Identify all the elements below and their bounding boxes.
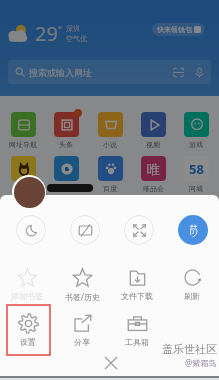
button[interactable]: 网址导航 (6, 112, 40, 149)
staticText: ° (58, 23, 62, 35)
button[interactable]: 快来领钱包 (152, 23, 205, 36)
button[interactable]: Ad blocker (178, 215, 208, 245)
button[interactable]: 百度 (93, 156, 127, 193)
staticText: 百度 (103, 184, 117, 193)
button[interactable]: Hide images (70, 215, 100, 245)
staticText: 搜索或输入网址 (29, 67, 92, 78)
button[interactable]: 分享 (55, 313, 109, 347)
button[interactable]: Night mode (16, 215, 46, 245)
button[interactable]: 58 (179, 156, 213, 193)
button[interactable]: 小说 (93, 112, 127, 149)
staticText: 58 (189, 160, 204, 178)
button[interactable]: Full screen (124, 215, 154, 245)
staticText: 淘宝 (16, 184, 30, 193)
staticText: 分享 (74, 337, 90, 347)
button[interactable]: 唯 (136, 156, 170, 193)
button[interactable]: 添加书签 (0, 267, 54, 301)
button[interactable]: Close (96, 348, 125, 377)
button[interactable]: 天猫 (49, 156, 83, 193)
staticText: 天猫 (59, 184, 73, 193)
staticText: 游戏 (189, 140, 203, 149)
staticText: 空气优 (66, 34, 87, 43)
staticText: 同城 (189, 184, 203, 193)
button[interactable]: 书签/历史 (55, 267, 109, 302)
button[interactable]: 工具箱 (110, 313, 164, 347)
button[interactable]: Account (12, 175, 46, 209)
staticText: 刷新 (184, 291, 200, 301)
button[interactable]: 游戏 (179, 112, 213, 149)
button[interactable]: 淘宝 (6, 156, 40, 193)
staticText: 快来领钱包 (157, 25, 192, 34)
staticText: 网址导航 (9, 140, 37, 149)
staticText: 头条 (59, 140, 73, 149)
button[interactable]: 文件下载 (110, 267, 164, 301)
staticText: 29 (35, 20, 58, 47)
staticText: 工具箱 (125, 337, 149, 347)
button[interactable]: 刷新 (165, 267, 219, 301)
staticText: 书签/历史 (65, 291, 100, 302)
staticText: 唯 (147, 161, 160, 177)
staticText: @紫霜鸟 (185, 357, 217, 368)
button[interactable]: 设置 (1, 313, 55, 347)
staticText: 唯品会 (143, 184, 164, 193)
staticText: 小说 (103, 140, 117, 149)
staticText: 文件下载 (121, 291, 153, 301)
button[interactable]: 头条 (49, 112, 83, 149)
button[interactable]: 搜索或输入网址 (8, 60, 211, 84)
button[interactable]: 视频 (136, 112, 170, 149)
staticText: 视频 (146, 140, 160, 149)
staticText: 添加书签 (11, 291, 43, 301)
staticText: 设置 (20, 337, 36, 347)
staticText: 盖乐世社区 (162, 342, 217, 356)
staticText: 深圳 (66, 24, 80, 33)
